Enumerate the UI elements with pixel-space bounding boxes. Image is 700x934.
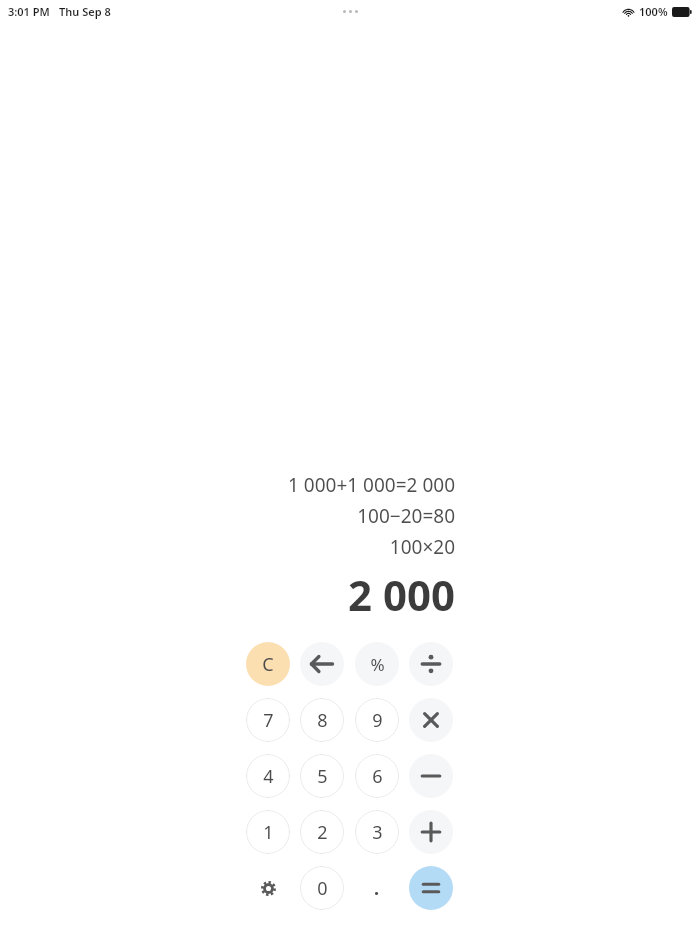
button[interactable]: 9: [355, 698, 399, 742]
staticText: 100%: [639, 4, 668, 19]
staticText: %: [370, 653, 385, 676]
button[interactable]: 6: [355, 754, 399, 798]
button[interactable]: 1: [246, 810, 290, 854]
button[interactable]: C: [246, 642, 290, 686]
staticText: 7: [263, 708, 274, 733]
button[interactable]: 8: [300, 698, 344, 742]
staticText: 3:01 PM: [8, 4, 50, 19]
button[interactable]: Minus: [409, 754, 453, 798]
staticText: 1: [263, 820, 274, 845]
staticText: 4: [263, 764, 274, 789]
button[interactable]: Backspace: [300, 642, 344, 686]
button[interactable]: Equals: [409, 866, 453, 910]
staticText: 5: [317, 764, 328, 789]
staticText: 0: [317, 876, 328, 901]
staticText: 6: [372, 764, 383, 789]
button[interactable]: Divide: [409, 642, 453, 686]
button[interactable]: 7: [246, 698, 290, 742]
staticText: 2: [317, 820, 328, 845]
staticText: 9: [372, 708, 383, 733]
staticText: 2 000: [0, 566, 455, 623]
button[interactable]: Settings: [246, 866, 290, 910]
button[interactable]: 2: [300, 810, 344, 854]
button[interactable]: Plus: [409, 810, 453, 854]
button[interactable]: 5: [300, 754, 344, 798]
button[interactable]: %: [355, 642, 399, 686]
staticText: 100−20=80: [0, 503, 455, 529]
staticText: 1 000+1 000=2 000: [0, 472, 455, 498]
staticText: 100×20: [0, 534, 455, 560]
button[interactable]: 3: [355, 810, 399, 854]
button[interactable]: 4: [246, 754, 290, 798]
button[interactable]: .: [355, 866, 399, 910]
staticText: 3: [372, 820, 383, 845]
button[interactable]: 0: [300, 866, 344, 910]
staticText: Thu Sep 8: [59, 4, 111, 19]
staticText: 8: [317, 708, 328, 733]
staticText: C: [262, 652, 274, 677]
button[interactable]: Multiply: [409, 698, 453, 742]
staticText: .: [374, 876, 380, 901]
